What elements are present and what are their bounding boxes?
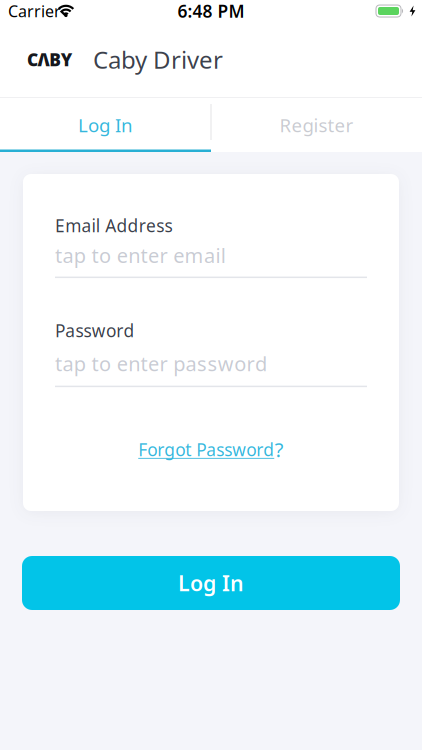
staticText: Log In bbox=[78, 113, 133, 137]
button[interactable]: tap to enter password bbox=[55, 350, 367, 387]
staticText: CΛBY bbox=[27, 48, 73, 71]
staticText: Email Address bbox=[55, 214, 172, 237]
staticText: ? bbox=[275, 436, 284, 463]
staticText: tap to enter email bbox=[55, 242, 226, 269]
staticText: Carrier bbox=[8, 0, 61, 22]
staticText: Forgot Password bbox=[138, 438, 274, 461]
staticText: Log In bbox=[178, 569, 244, 597]
button[interactable]: Register bbox=[211, 98, 422, 152]
staticText: 6:48 PM bbox=[177, 0, 244, 22]
staticText: Password bbox=[55, 319, 134, 342]
staticText: Register bbox=[279, 113, 353, 137]
button[interactable]: Log In bbox=[0, 98, 211, 152]
staticText: tap to enter password bbox=[55, 350, 267, 377]
button[interactable]: Log In bbox=[22, 556, 400, 610]
staticText: Caby Driver bbox=[93, 44, 223, 75]
button[interactable]: tap to enter email bbox=[55, 242, 367, 278]
button[interactable]: Forgot Password bbox=[138, 436, 284, 463]
